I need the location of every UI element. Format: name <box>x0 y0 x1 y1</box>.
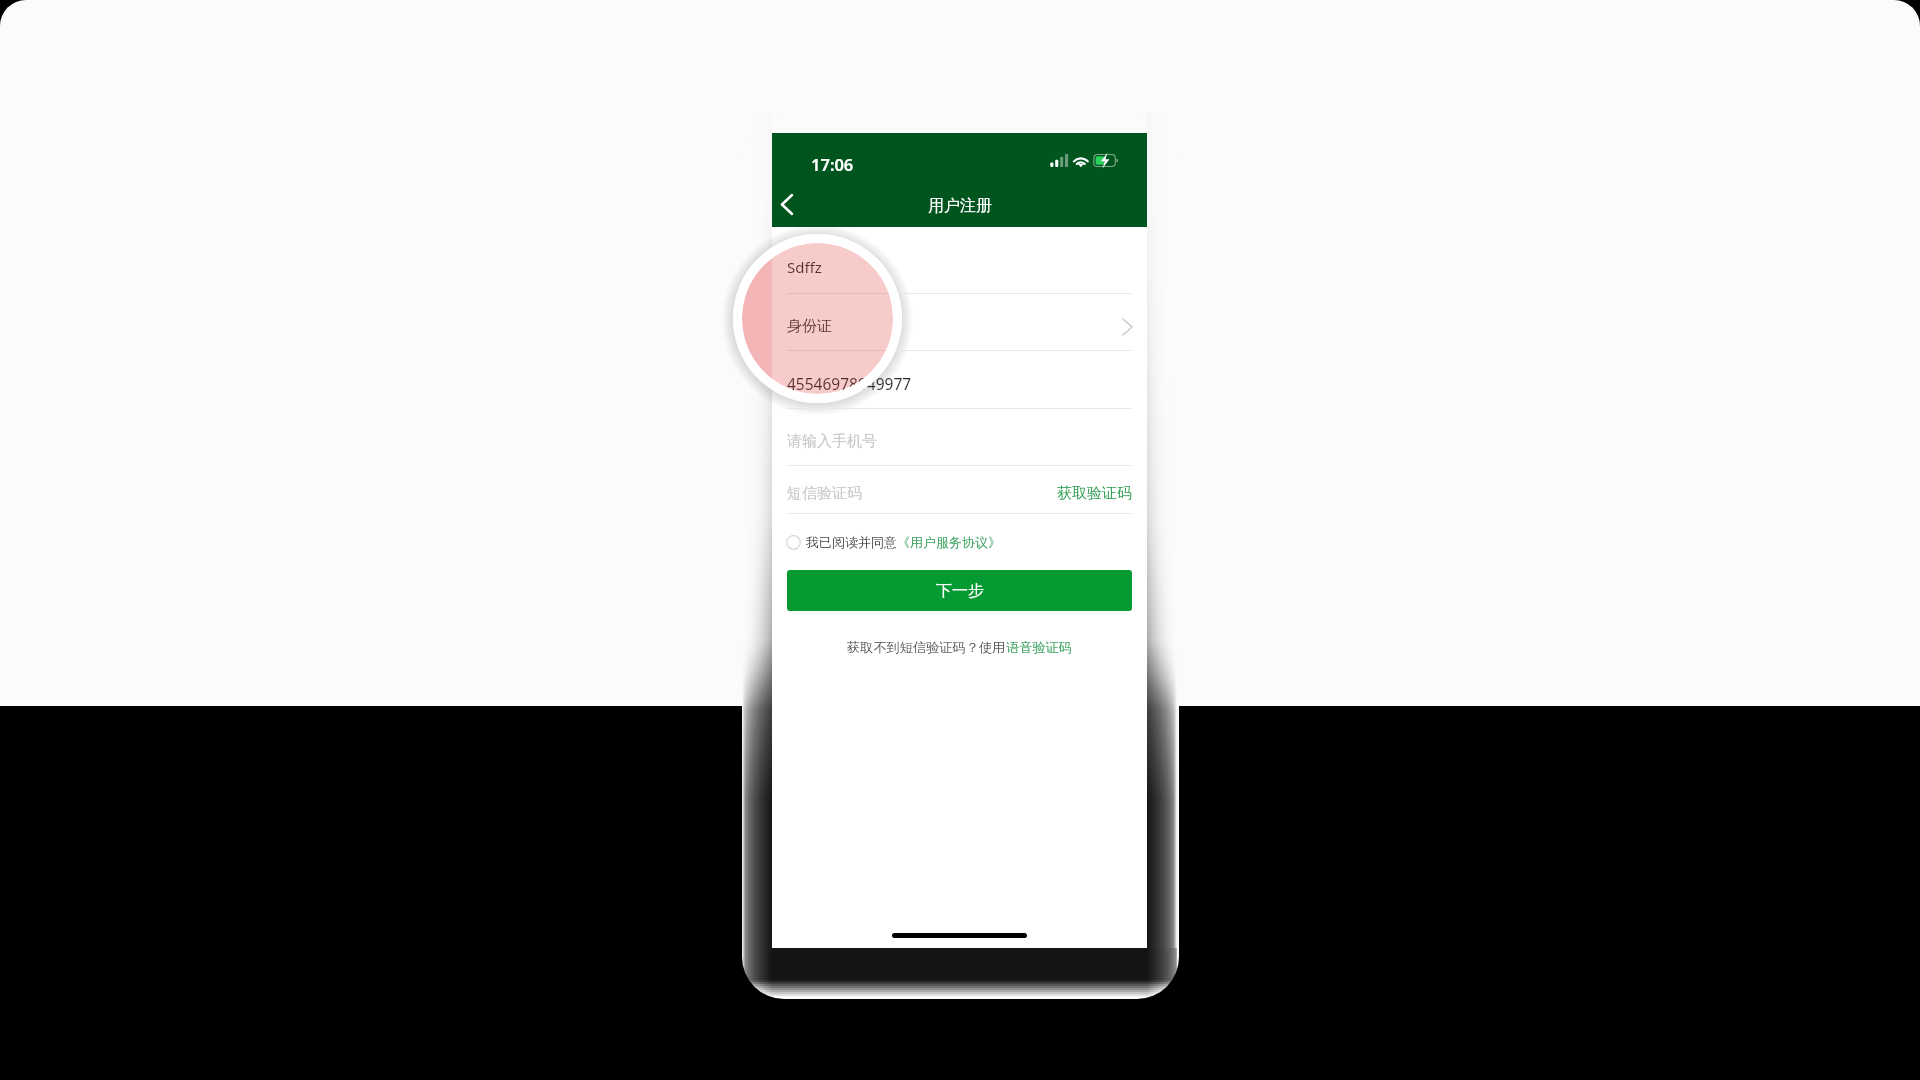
button[interactable]: 短信验证码 <box>787 466 1132 513</box>
staticText: 获取不到短信验证码？使用 <box>847 639 1006 656</box>
button[interactable]: 45546978949977 <box>787 351 1132 408</box>
button[interactable]: 我已阅读并同意 <box>786 522 1001 562</box>
staticText: 17:06 <box>811 153 854 175</box>
staticText: 身份证 <box>787 317 832 336</box>
staticText: 45546978949977 <box>787 373 912 394</box>
button[interactable]: Back <box>767 184 807 224</box>
staticText: 语音验证码 <box>1006 639 1072 656</box>
staticText: 《用户服务协议》 <box>897 534 1001 550</box>
staticText: 下一步 <box>936 581 984 601</box>
staticText: 用户注册 <box>928 196 992 216</box>
staticText: 短信验证码 <box>787 484 862 503</box>
staticText: 请输入手机号 <box>787 432 877 451</box>
button[interactable]: 语音验证码 <box>1006 639 1072 656</box>
button[interactable]: 请输入手机号 <box>787 409 1132 465</box>
button[interactable]: Sdffz <box>787 227 1132 293</box>
button[interactable]: 下一步 <box>787 570 1132 611</box>
staticText: 获取验证码 <box>1057 484 1132 503</box>
staticText: 我已阅读并同意 <box>806 534 897 550</box>
button[interactable]: Get verification code <box>1057 484 1132 503</box>
staticText: Sdffz <box>787 257 822 277</box>
button[interactable]: 身份证 <box>787 294 1132 350</box>
